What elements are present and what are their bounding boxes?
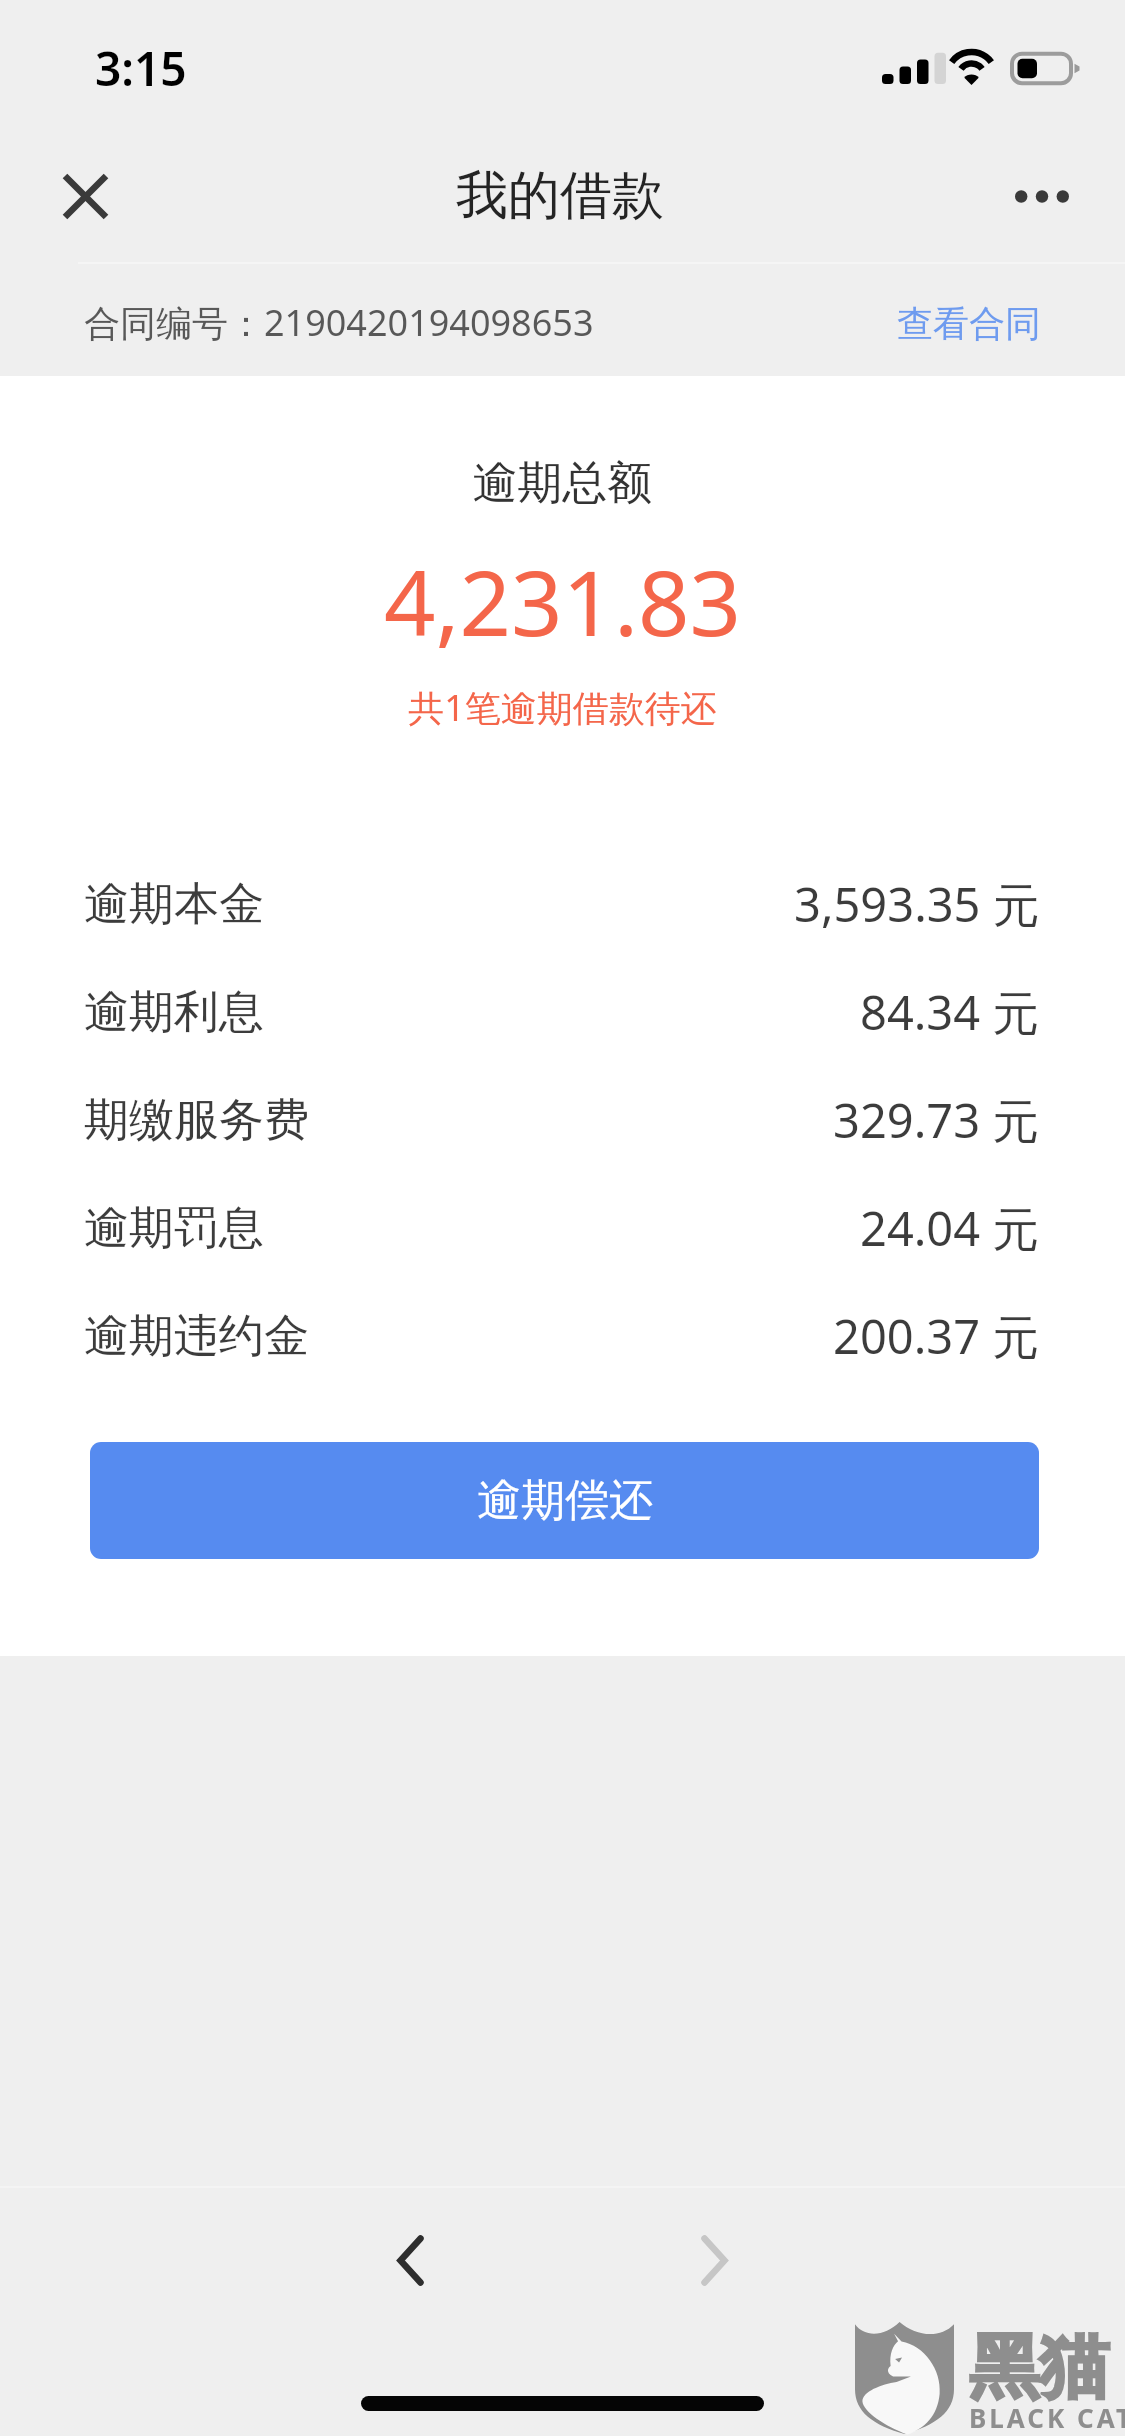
staticText: 查看合同 [897, 301, 1041, 346]
staticText: 24.04 元 [860, 1196, 1040, 1260]
staticText: 逾期偿还 [477, 1473, 653, 1528]
staticText: 逾期违约金 [84, 1308, 309, 1365]
staticText: 3:15 [95, 37, 187, 100]
staticText: 逾期总额 [0, 455, 1125, 512]
button[interactable]: Back [350, 2200, 470, 2320]
staticText: 逾期罚息 [84, 1200, 264, 1257]
staticText: 逾期利息 [84, 984, 264, 1041]
staticText: 329.73 元 [833, 1088, 1040, 1152]
staticText: 共1笔逾期借款待还 [0, 683, 1125, 732]
staticText: 黑猫 [969, 2324, 1109, 2412]
button[interactable]: Forward [654, 2200, 774, 2320]
button[interactable]: 逾期偿还 [90, 1442, 1039, 1559]
button[interactable]: 查看合同 [867, 277, 1071, 370]
button[interactable]: Close [40, 151, 130, 241]
staticText: 4,231.83 [0, 540, 1125, 663]
staticText: 期缴服务费 [84, 1092, 309, 1149]
staticText: 我的借款 [456, 163, 664, 229]
staticText: 84.34 元 [860, 980, 1040, 1044]
button[interactable]: More options [987, 151, 1097, 241]
staticText: BLACK CAT [969, 2400, 1125, 2435]
staticText: 逾期本金 [84, 876, 264, 933]
staticText: 3,593.35 元 [794, 872, 1040, 936]
staticText: 200.37 元 [833, 1304, 1040, 1368]
staticText: 合同编号：2190420194098653 [84, 298, 594, 347]
